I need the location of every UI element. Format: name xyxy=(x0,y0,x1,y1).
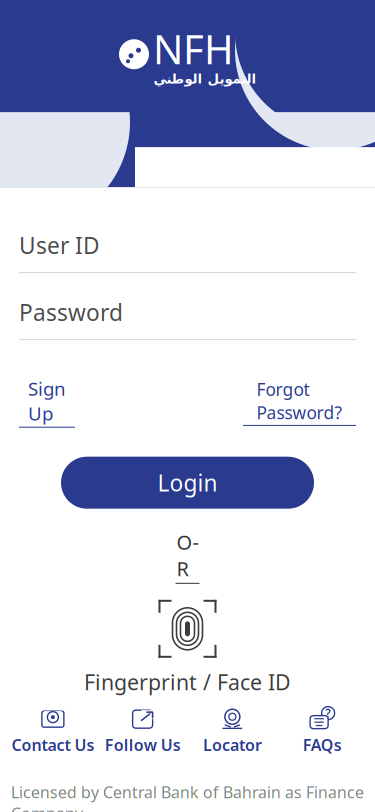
staticText: Follow Us xyxy=(105,734,181,755)
staticText: FAQs xyxy=(303,734,342,755)
staticText: Login xyxy=(157,468,217,498)
button[interactable]: Login xyxy=(61,457,314,509)
button[interactable]: OR xyxy=(175,529,199,584)
button[interactable]: Follow Us xyxy=(98,704,188,759)
button[interactable]: Forgot Password? xyxy=(243,378,356,426)
button[interactable]: Contact Us xyxy=(8,704,98,759)
staticText: Sign Up xyxy=(28,376,66,426)
staticText: التمويل الوطني xyxy=(153,71,256,86)
button[interactable]: ? xyxy=(277,704,367,759)
staticText: Forgot Password? xyxy=(256,378,342,424)
button[interactable]: Locator xyxy=(187,704,277,759)
staticText: Fingerprint / Face ID xyxy=(84,668,291,696)
staticText: Locator xyxy=(203,734,262,755)
staticText: OR xyxy=(176,529,198,582)
staticText: Password xyxy=(19,297,123,327)
staticText: NFH xyxy=(153,22,234,75)
button[interactable]: Sign Up xyxy=(19,376,75,428)
staticText: Contact Us xyxy=(11,734,94,755)
staticText: ? xyxy=(325,705,331,721)
staticText: User ID xyxy=(19,230,100,260)
button[interactable]: Fingerprint / Face ID xyxy=(84,600,291,696)
staticText: Licensed by Central Bank of Bahrain as F… xyxy=(11,781,364,812)
